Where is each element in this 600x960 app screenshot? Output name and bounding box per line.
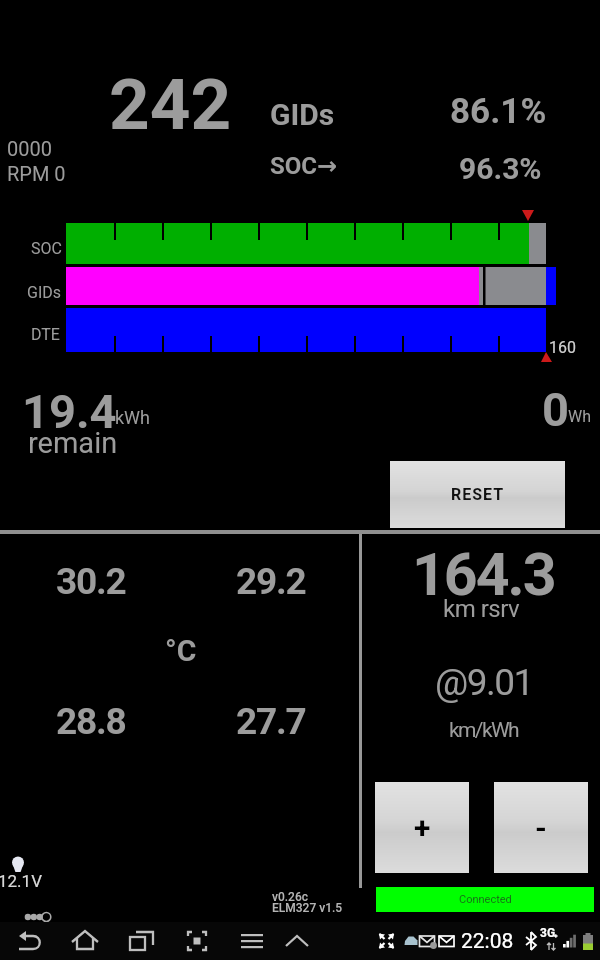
staticText: 22:08 bbox=[461, 929, 514, 954]
staticText: - bbox=[535, 810, 547, 845]
staticText: km rsrv bbox=[443, 595, 520, 623]
staticText: 30.2 bbox=[56, 560, 126, 603]
staticText: 164.3 bbox=[412, 540, 555, 609]
staticText: ELM327 v1.5 bbox=[272, 901, 343, 915]
staticText: 242 bbox=[109, 63, 232, 146]
button[interactable]: Expand bbox=[273, 922, 321, 960]
staticText: remain bbox=[28, 426, 118, 460]
staticText: @9.01 bbox=[435, 661, 533, 704]
staticText: Connected bbox=[459, 893, 512, 906]
button[interactable]: Back bbox=[6, 922, 54, 960]
staticText: 86.1% bbox=[450, 91, 547, 132]
staticText: GIDs bbox=[27, 283, 62, 302]
staticText: RESET bbox=[451, 485, 505, 504]
button[interactable]: Decrease bbox=[494, 782, 588, 873]
button[interactable]: Connected bbox=[376, 887, 594, 912]
staticText: Wh bbox=[568, 407, 592, 426]
staticText: 160 bbox=[549, 338, 576, 357]
button[interactable]: Menu bbox=[228, 922, 276, 960]
staticText: 28.8 bbox=[56, 700, 126, 743]
staticText: + bbox=[414, 810, 431, 845]
staticText: 96.3% bbox=[459, 151, 542, 186]
staticText: 19.4 bbox=[22, 384, 117, 439]
staticText: 0 bbox=[542, 382, 569, 437]
button[interactable]: RESET bbox=[390, 461, 565, 528]
staticText: GIDs bbox=[270, 97, 335, 132]
staticText: km/kWh bbox=[449, 718, 518, 743]
button[interactable]: Screenshot bbox=[173, 922, 221, 960]
staticText: kWh bbox=[115, 407, 151, 428]
button[interactable]: Recent apps bbox=[118, 922, 166, 960]
staticText: °C bbox=[165, 633, 197, 668]
button[interactable]: Home bbox=[61, 922, 109, 960]
staticText: v0.26c bbox=[272, 890, 309, 904]
staticText: 3G bbox=[540, 926, 556, 940]
button[interactable]: Increase bbox=[375, 782, 469, 873]
staticText: 0000 bbox=[7, 137, 52, 160]
staticText: SOC bbox=[31, 239, 62, 258]
staticText: 12.1V bbox=[0, 871, 42, 891]
staticText: 27.7 bbox=[236, 700, 306, 743]
staticText: DTE bbox=[31, 325, 60, 344]
staticText: SOC→ bbox=[270, 152, 338, 180]
staticText: RPM 0 bbox=[7, 162, 66, 185]
staticText: 29.2 bbox=[236, 560, 306, 603]
